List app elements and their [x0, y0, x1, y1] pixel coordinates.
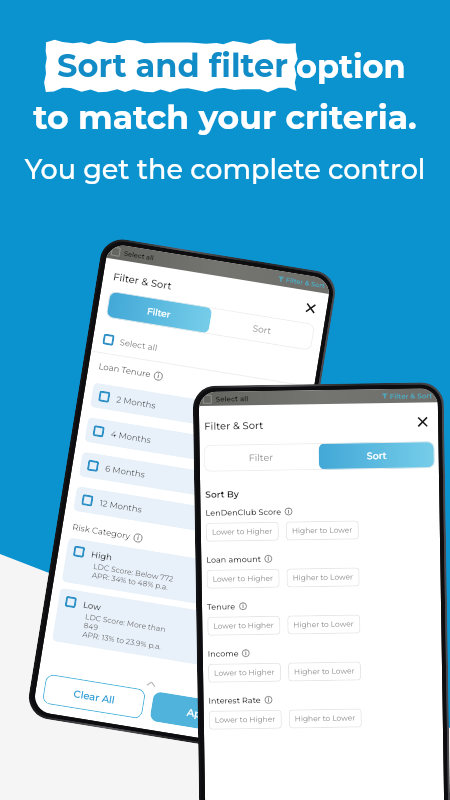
staticText: Filter & Sort — [204, 419, 264, 432]
button[interactable]: Higher to Lower — [288, 661, 361, 681]
staticText: Lower to Higher — [214, 668, 275, 678]
staticText: Higher to Lower — [293, 619, 354, 629]
staticText: Filter — [146, 305, 172, 320]
staticText: Sort and filter — [57, 46, 288, 85]
button[interactable]: 2 Months — [90, 382, 301, 441]
button[interactable]: Higher to Lower — [289, 708, 362, 728]
button[interactable] — [98, 390, 111, 403]
staticText: Apply — [186, 706, 218, 722]
staticText: option — [296, 47, 406, 86]
button[interactable]: Lower to Higher — [206, 522, 279, 542]
staticText: High — [90, 549, 113, 562]
button[interactable] — [92, 425, 105, 438]
staticText: Lower to Higher — [212, 574, 274, 584]
button[interactable] — [81, 494, 94, 507]
staticText: Filter & Sort — [390, 391, 433, 401]
staticText: Interest Rate — [208, 695, 262, 706]
staticText: Higher to Lower — [294, 666, 355, 676]
staticText: Loan Tenure — [98, 361, 152, 379]
staticText: Loan amount — [206, 554, 261, 565]
button[interactable]: Higher to Lower — [286, 567, 360, 587]
button[interactable]: Lower to Higher — [209, 710, 282, 730]
button[interactable]: 4 Months — [84, 417, 296, 475]
staticText: Higher to Lower — [292, 572, 354, 582]
button[interactable]: Lower to Higher — [206, 569, 280, 589]
staticText: 4 Months — [110, 429, 152, 445]
button[interactable]: Low — [52, 588, 268, 675]
button[interactable]: Higher to Lower — [286, 520, 359, 540]
staticText: Clear All — [73, 687, 116, 706]
staticText: Sort — [367, 450, 387, 462]
staticText: Tenure — [207, 601, 236, 612]
staticText: You get the complete control — [0, 153, 450, 186]
staticText: to match your criteria. — [0, 97, 450, 137]
staticText: Select all — [123, 250, 155, 262]
button[interactable]: Apply — [149, 691, 254, 737]
staticText: 6 Months — [104, 463, 146, 480]
staticText: Higher to Lower — [292, 525, 353, 535]
staticText: Select all — [216, 394, 249, 404]
button[interactable]: Filter — [106, 291, 213, 334]
button[interactable]: Filter — [203, 443, 319, 472]
staticText: LDC Score: More than 849 — [83, 612, 173, 644]
button[interactable]: Close — [304, 301, 318, 315]
staticText: Low — [82, 600, 102, 612]
button[interactable]: High — [61, 537, 276, 615]
staticText: Lower to Higher — [215, 715, 276, 725]
button[interactable]: Sort — [318, 441, 435, 470]
staticText: Sort By — [205, 488, 239, 500]
button[interactable]: Sort — [208, 307, 315, 351]
staticText: Risk Category — [72, 522, 131, 541]
staticText: LDC Score: Below 772 — [93, 562, 174, 584]
staticText: Lower to Higher — [213, 621, 274, 631]
staticText: Filter & Sort — [285, 276, 326, 290]
button[interactable]: Higher to Lower — [287, 614, 360, 634]
button[interactable]: Lower to Higher — [208, 663, 281, 683]
staticText: 12 Months — [99, 498, 143, 515]
staticText: APR: 13% to 23.9% p.a. — [82, 630, 162, 651]
staticText: 2 Months — [116, 394, 157, 411]
button[interactable]: 12 Months — [73, 486, 284, 544]
staticText: Income — [208, 648, 239, 659]
staticText: Select all — [119, 337, 158, 353]
staticText: Filter & Sort — [112, 270, 173, 292]
button[interactable]: 6 Months — [79, 451, 290, 510]
staticText: Sort — [252, 322, 272, 336]
staticText: Higher to Lower — [295, 713, 356, 723]
staticText: Filter — [249, 452, 274, 464]
button[interactable]: Lower to Higher — [207, 616, 280, 636]
button[interactable]: Clear All — [42, 673, 146, 719]
button[interactable] — [87, 459, 99, 472]
staticText: Lower to Higher — [212, 527, 273, 537]
button[interactable] — [64, 596, 77, 608]
button[interactable]: Close — [416, 415, 429, 428]
button[interactable] — [73, 545, 85, 558]
staticText: LenDenClub Score — [205, 507, 282, 518]
button[interactable] — [102, 333, 115, 346]
staticText: APR: 34% to 48% p.a. — [91, 571, 169, 592]
